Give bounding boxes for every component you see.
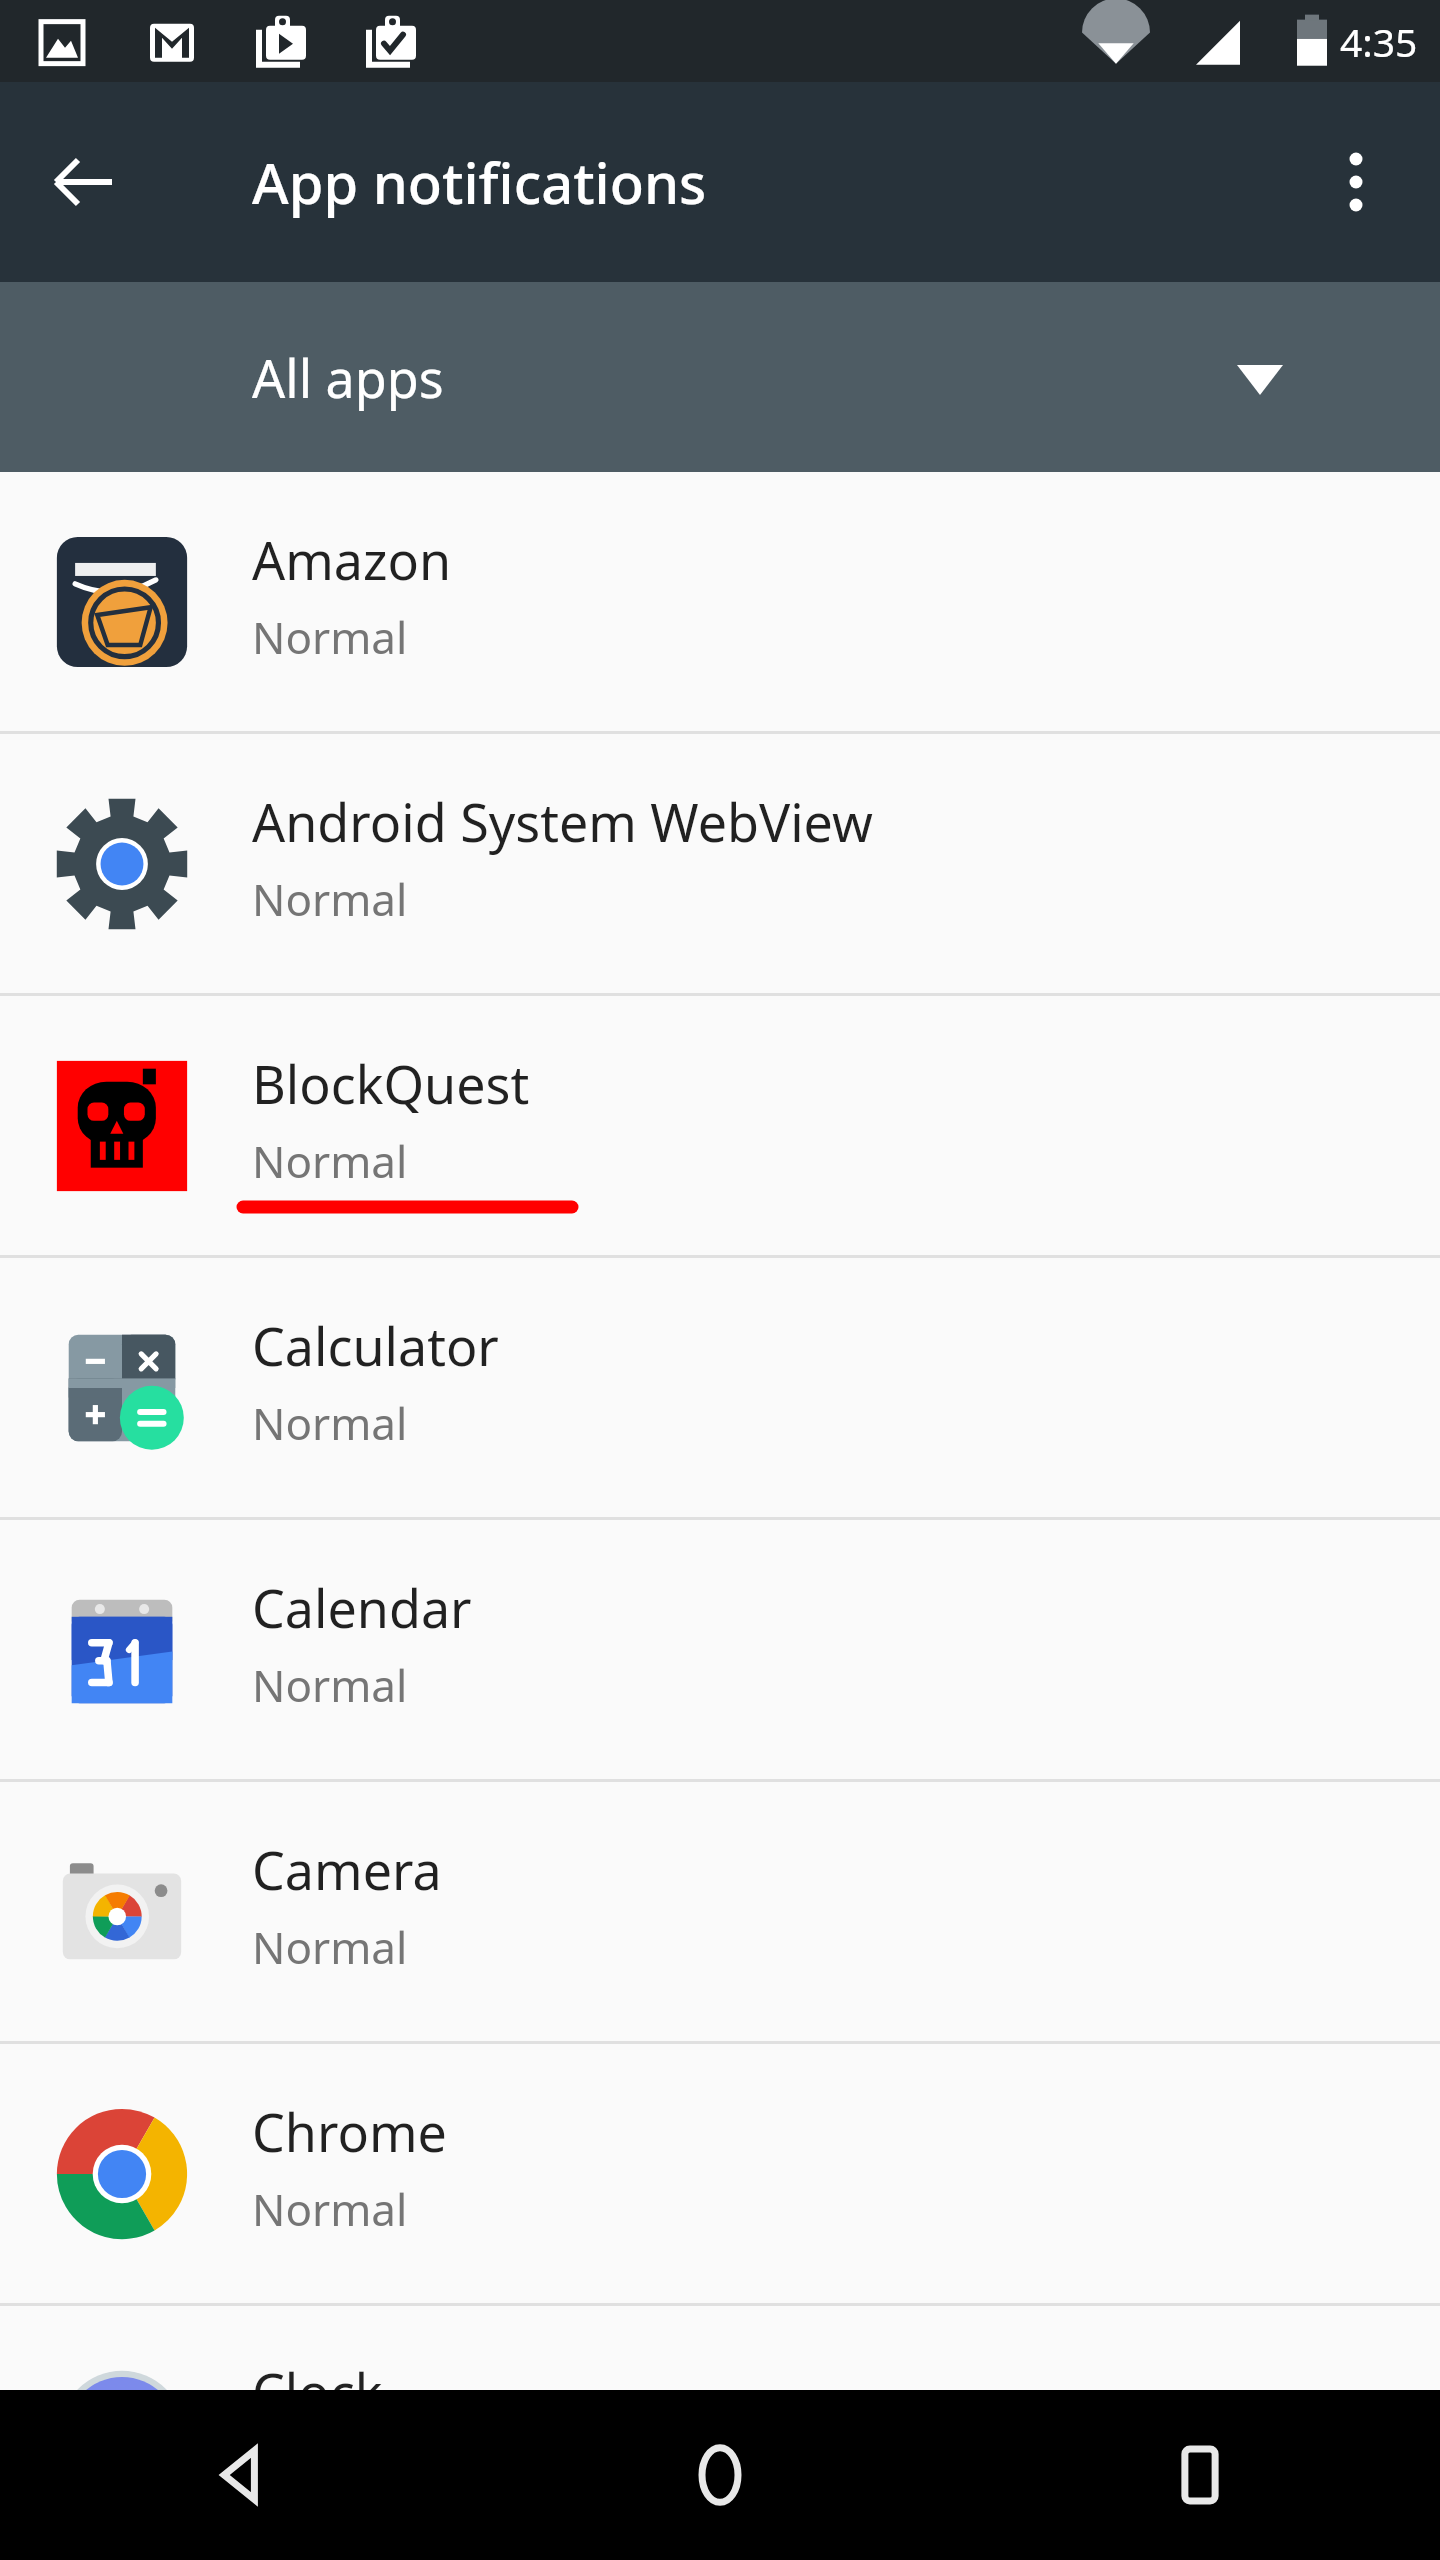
- staticText: Calculator: [252, 1310, 499, 1381]
- button[interactable]: Home: [655, 2410, 785, 2540]
- button[interactable]: Chrome: [0, 2044, 1440, 2303]
- staticText: Normal: [252, 1131, 408, 1191]
- button[interactable]: More options: [1308, 134, 1404, 230]
- staticText: Normal: [252, 1655, 408, 1715]
- staticText: App notifications: [252, 144, 707, 220]
- staticText: Chrome: [252, 2096, 447, 2167]
- staticText: Normal: [252, 607, 408, 667]
- button[interactable]: Camera: [0, 1782, 1440, 2041]
- button[interactable]: Recent apps: [1135, 2410, 1265, 2540]
- button[interactable]: Calendar: [0, 1520, 1440, 1779]
- button[interactable]: Android System WebView: [0, 734, 1440, 993]
- staticText: All apps: [252, 342, 444, 413]
- staticText: Normal: [252, 2179, 408, 2239]
- staticText: Clock: [252, 2356, 383, 2427]
- staticText: Normal: [252, 1393, 408, 1453]
- staticText: 4:35: [1340, 15, 1418, 68]
- staticText: Normal: [252, 869, 408, 929]
- staticText: Amazon: [252, 524, 452, 595]
- button[interactable]: BlockQuest: [0, 996, 1440, 1255]
- staticText: Normal: [252, 1917, 408, 1977]
- staticText: BlockQuest: [252, 1048, 530, 1119]
- button[interactable]: Amazon: [0, 472, 1440, 731]
- staticText: Camera: [252, 1834, 442, 1905]
- button[interactable]: All apps: [0, 282, 1440, 472]
- staticText: Calendar: [252, 1572, 472, 1643]
- staticText: Android System WebView: [252, 786, 873, 857]
- staticText: Normal: [252, 2439, 408, 2499]
- button[interactable]: Navigate up: [36, 134, 132, 230]
- button[interactable]: Clock: [0, 2306, 1440, 2560]
- button[interactable]: Calculator: [0, 1258, 1440, 1517]
- button[interactable]: Back: [175, 2410, 305, 2540]
